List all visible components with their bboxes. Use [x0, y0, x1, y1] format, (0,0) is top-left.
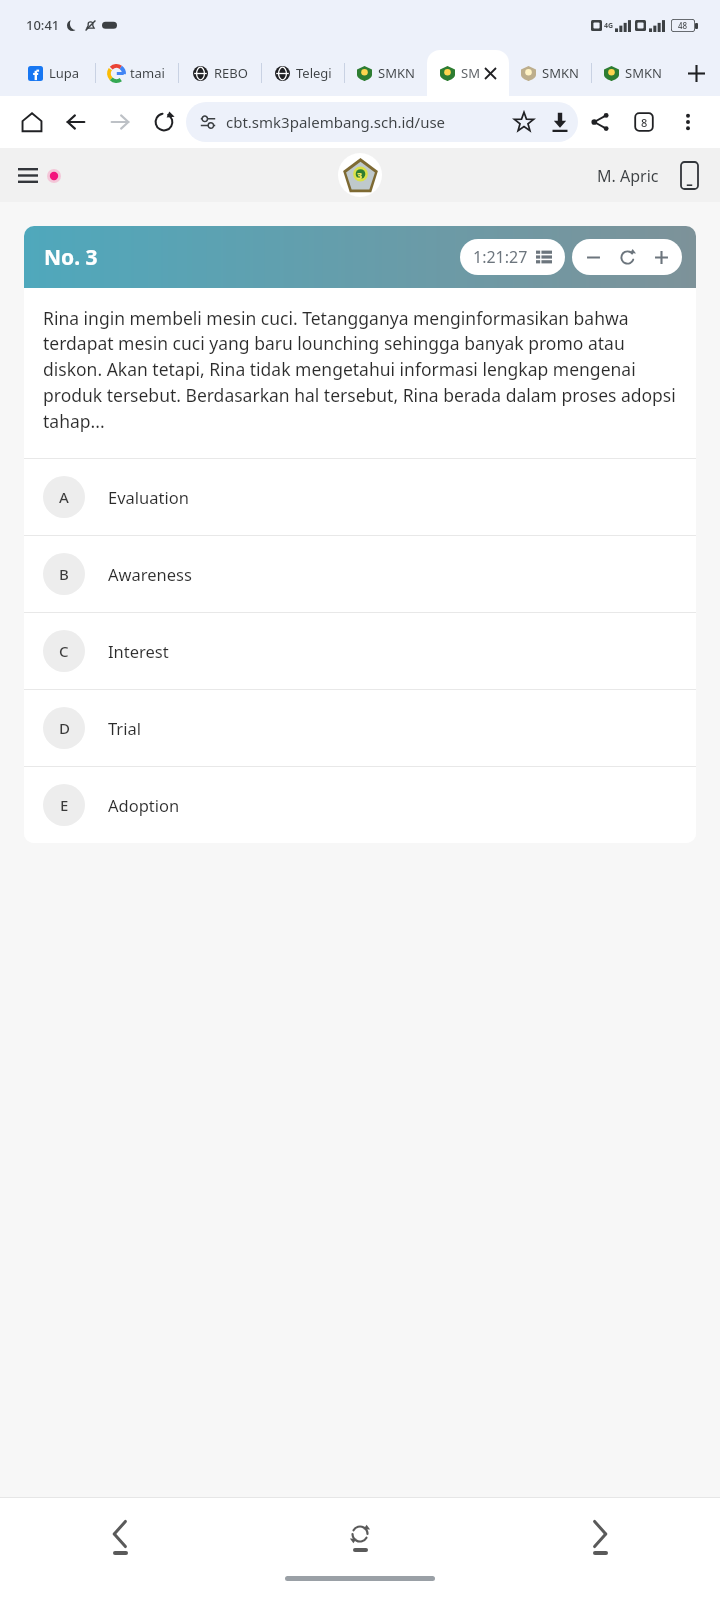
button[interactable]: Tabs	[622, 100, 666, 144]
button[interactable]: Previous	[0, 1498, 240, 1576]
staticText: Lupa	[49, 64, 80, 82]
button[interactable]: Zoom in	[644, 239, 678, 275]
button[interactable]: B	[24, 536, 696, 612]
staticText: B	[59, 564, 69, 584]
button[interactable]: Telegi	[262, 50, 344, 96]
button[interactable]: A	[24, 459, 696, 535]
staticText: E	[60, 795, 69, 815]
button[interactable]: More options	[666, 100, 710, 144]
staticText: M. Apric	[597, 165, 659, 187]
staticText: Trial	[108, 717, 141, 739]
button[interactable]: Reload	[142, 100, 186, 144]
button[interactable]: SMKN	[592, 50, 674, 96]
button[interactable]: New tab	[674, 50, 718, 96]
staticText: SMKN	[542, 64, 579, 82]
staticText: C	[59, 641, 69, 661]
button[interactable]: Lupa	[12, 50, 95, 96]
button[interactable]: Reset zoom	[610, 239, 644, 275]
button[interactable]: Zoom out	[576, 239, 610, 275]
button[interactable]: D	[24, 690, 696, 766]
button[interactable]: Menu	[10, 162, 69, 189]
button[interactable]: Next	[480, 1498, 720, 1576]
staticText: Interest	[108, 640, 169, 662]
button[interactable]: tamai	[96, 50, 178, 96]
staticText: Adoption	[108, 794, 180, 816]
staticText: No. 3	[44, 243, 98, 272]
button[interactable]: Share	[578, 100, 622, 144]
staticText: 1:21:27	[473, 246, 528, 268]
button[interactable]: cbt.smk3palembang.sch.id/use	[186, 102, 578, 142]
staticText: REBO	[214, 64, 248, 82]
button[interactable]: E	[24, 767, 696, 843]
button[interactable]: Bookmark	[506, 104, 542, 140]
staticText: SMKN	[378, 64, 415, 82]
button[interactable]: SM	[427, 50, 509, 96]
staticText: 4G	[604, 21, 614, 31]
button[interactable]: Device	[677, 158, 702, 193]
button[interactable]: Refresh	[240, 1498, 480, 1576]
staticText: Evaluation	[108, 486, 189, 508]
staticText: Rina ingin membeli mesin cuci. Tetanggan…	[43, 306, 677, 434]
staticText: D	[59, 718, 70, 738]
staticText: 3	[357, 169, 363, 181]
button[interactable]: C	[24, 613, 696, 689]
button[interactable]: SMKN	[509, 50, 591, 96]
button[interactable]: Back	[54, 100, 98, 144]
button[interactable]: Home	[10, 100, 54, 144]
staticText: Telegi	[296, 64, 332, 82]
staticText: 48	[678, 20, 688, 31]
button[interactable]: M. Apric	[593, 159, 663, 193]
button[interactable]: 1:21:27	[460, 239, 565, 275]
staticText: Awareness	[108, 563, 192, 585]
staticText: SMKN	[625, 64, 662, 82]
staticText: SM	[461, 64, 480, 82]
staticText: cbt.smk3palembang.sch.id/use	[226, 112, 446, 132]
button[interactable]: SMKN	[345, 50, 427, 96]
staticText: A	[59, 487, 69, 507]
staticText: tamai	[130, 64, 165, 82]
staticText: 10:41	[26, 16, 60, 34]
button[interactable]: Forward	[98, 100, 142, 144]
button[interactable]: REBO	[179, 50, 261, 96]
staticText: 8	[641, 115, 648, 130]
button[interactable]: Download	[542, 104, 578, 140]
